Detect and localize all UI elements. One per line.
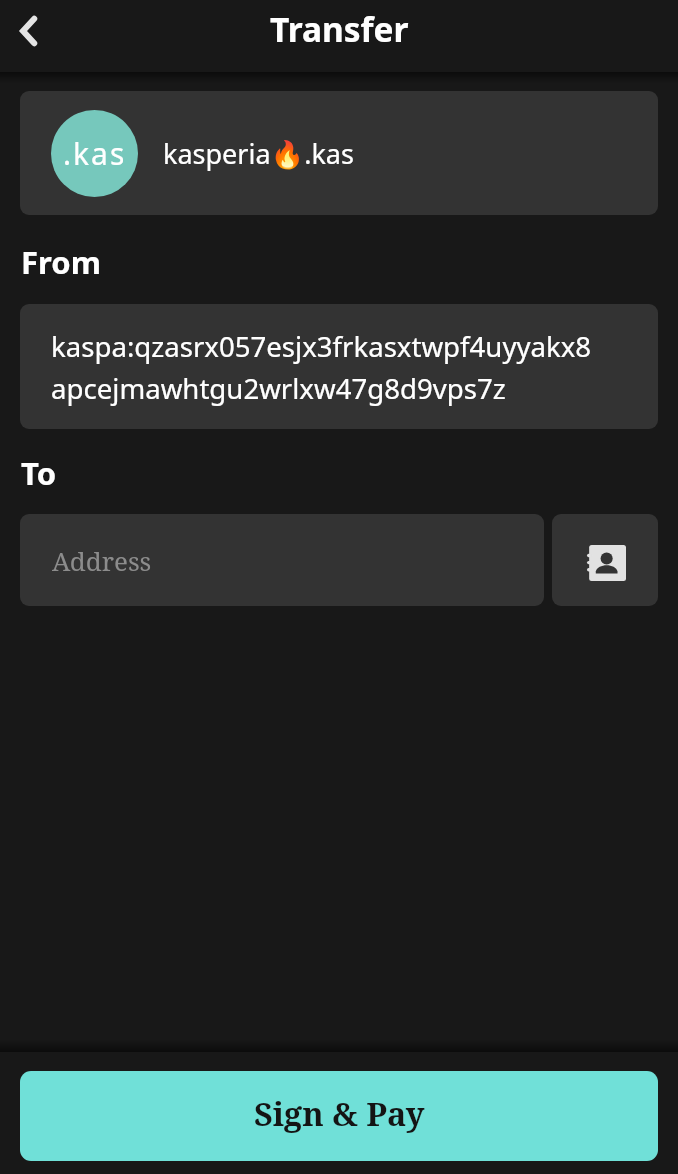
staticText: Transfer	[270, 6, 409, 52]
staticText: Sign & Pay	[254, 1091, 425, 1135]
button[interactable]: kaspa:qzasrx057esjx3frkasxtwpf4uyyakx8ap…	[20, 304, 658, 429]
button[interactable]: Sign & Pay	[20, 1071, 658, 1161]
staticText: kasperia🔥.kas	[163, 135, 354, 172]
staticText: From	[21, 241, 101, 283]
staticText: .kas	[63, 133, 127, 174]
button[interactable]: .kas	[20, 91, 658, 215]
button[interactable]: Back	[4, 3, 60, 59]
staticText: To	[21, 452, 57, 494]
staticText: kaspa:qzasrx057esjx3frkasxtwpf4uyyakx8ap…	[51, 327, 593, 407]
staticText: Address	[52, 543, 152, 578]
button[interactable]: Choose contact	[552, 514, 658, 606]
button[interactable]: Address	[20, 514, 544, 606]
